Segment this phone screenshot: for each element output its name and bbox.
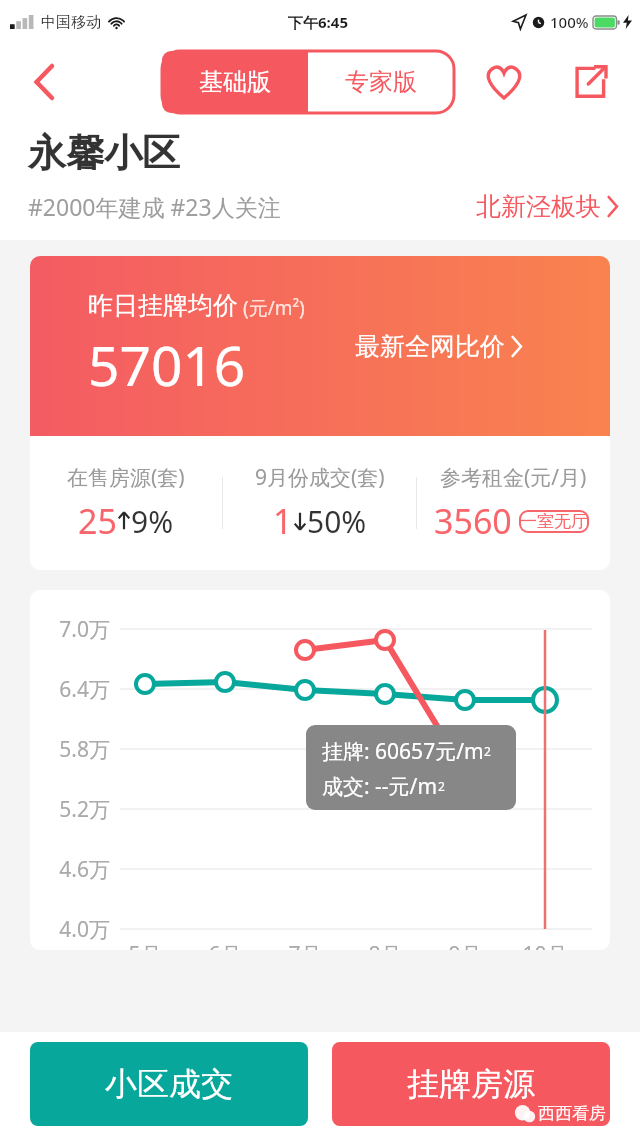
- staticText: 挂牌: 60657元/m: [322, 737, 484, 766]
- staticText: #2000年建成 #23人关注: [28, 191, 281, 222]
- staticText: 5月: [115, 940, 175, 950]
- staticText: 5.8万: [48, 735, 110, 764]
- staticText: 基础版: [199, 67, 271, 97]
- button[interactable]: 挂牌房源: [332, 1042, 610, 1126]
- staticText: 昨日挂牌均价: [88, 290, 238, 321]
- staticText: 9月份成交(套): [255, 463, 385, 492]
- button[interactable]: 最新全网比价: [355, 331, 522, 362]
- button[interactable]: 基础版: [162, 51, 308, 113]
- staticText: 1: [273, 498, 293, 544]
- staticText: 挂牌房源: [407, 1064, 535, 1104]
- staticText: 10月: [515, 940, 575, 950]
- staticText: 成交: --元/m: [322, 772, 438, 801]
- button[interactable]: Back: [18, 55, 72, 109]
- staticText: 100%: [550, 12, 589, 32]
- button[interactable]: 专家版: [308, 51, 454, 113]
- staticText: 北新泾板块: [476, 191, 601, 222]
- staticText: 永馨小区: [28, 129, 180, 177]
- button[interactable]: 昨日挂牌均价: [30, 256, 610, 436]
- staticText: 最新全网比价: [355, 331, 505, 362]
- staticText: (元/m²): [238, 295, 305, 321]
- staticText: 4.6万: [48, 855, 110, 884]
- staticText: 6月: [195, 940, 255, 950]
- button[interactable]: 北新泾板块: [476, 191, 618, 222]
- button[interactable]: 小区成交: [30, 1042, 308, 1126]
- staticText: 7.0万: [48, 615, 110, 644]
- staticText: 25: [78, 498, 117, 544]
- staticText: 50%: [307, 501, 367, 542]
- staticText: 2: [438, 778, 445, 794]
- staticText: 在售房源(套): [67, 463, 185, 492]
- button[interactable]: Share: [562, 54, 618, 110]
- staticText: 3560: [434, 498, 512, 544]
- staticText: 9%: [131, 501, 174, 542]
- button[interactable]: 在售房源(套): [30, 463, 222, 544]
- button[interactable]: 参考租金(元/月): [417, 463, 610, 544]
- staticText: 57016: [88, 327, 246, 402]
- staticText: 参考租金(元/月): [440, 463, 587, 492]
- staticText: 西西看房: [538, 1103, 606, 1124]
- staticText: 小区成交: [105, 1064, 233, 1104]
- staticText: 8月: [355, 940, 415, 950]
- staticText: 2: [484, 743, 491, 759]
- button[interactable]: Favorite: [476, 54, 532, 110]
- staticText: 6.4万: [48, 675, 110, 704]
- staticText: 9月: [435, 940, 495, 950]
- staticText: 专家版: [345, 67, 417, 97]
- staticText: 5.2万: [48, 795, 110, 824]
- staticText: 中国移动: [41, 13, 101, 32]
- staticText: 7月: [275, 940, 335, 950]
- staticText: 下午6:45: [288, 12, 348, 32]
- button[interactable]: 9月份成交(套): [223, 463, 416, 544]
- staticText: 4.0万: [48, 915, 110, 944]
- staticText: 一室无厅: [520, 511, 588, 532]
